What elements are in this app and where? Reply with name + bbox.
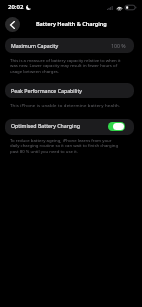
staticText: Maximum Capacity — [11, 42, 59, 49]
staticText: Peak Performance Capability — [11, 87, 82, 94]
button[interactable]: Back — [5, 17, 20, 32]
staticText: Optimised Battery Charging — [11, 122, 80, 129]
button[interactable]: Optimised Battery Charging — [108, 122, 125, 131]
staticText: Battery Health & Charging — [36, 20, 107, 27]
button[interactable]: Maximum Capacity — [5, 38, 134, 53]
staticText: 20:02 — [8, 3, 24, 11]
staticText: This is a measure of battery capacity re… — [10, 57, 122, 75]
staticText: This iPhone is unable to determine batte… — [10, 102, 134, 108]
staticText: 100 % — [111, 42, 126, 49]
button[interactable]: Optimised Battery Charging — [5, 119, 134, 135]
staticText: To reduce battery ageing, iPhone learns … — [10, 137, 122, 155]
button[interactable]: Peak Performance Capability — [5, 83, 134, 98]
